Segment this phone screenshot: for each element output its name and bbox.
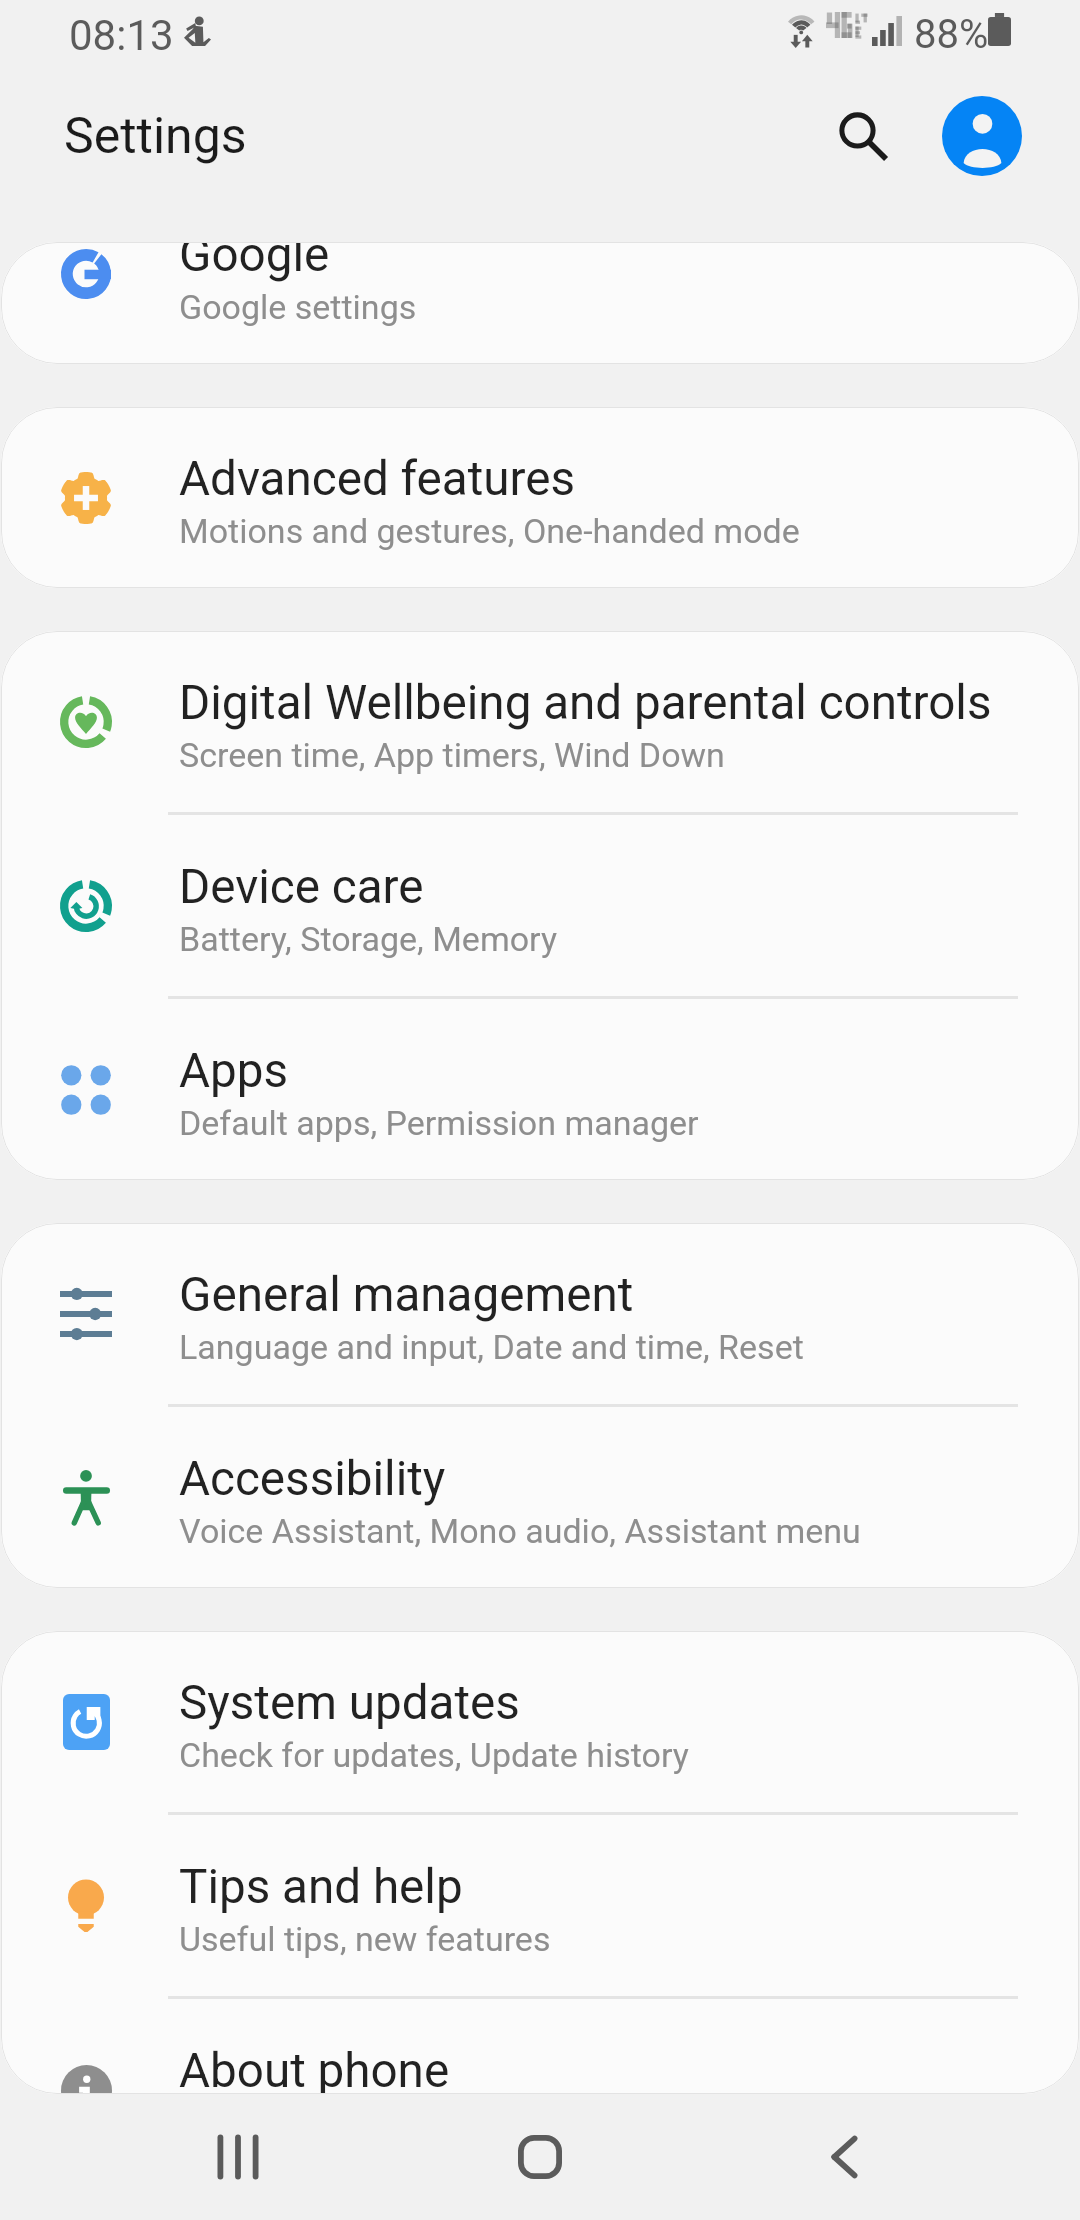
staticText: Language and input, Date and time, Reset xyxy=(179,1327,804,1367)
button[interactable]: Account xyxy=(942,96,1022,176)
button[interactable]: Google xyxy=(1,242,1079,364)
staticText: Google xyxy=(179,242,330,283)
staticText: 08:13 xyxy=(69,11,174,60)
staticText: Digital Wellbeing and parental controls xyxy=(179,675,992,731)
button[interactable]: Recent apps xyxy=(175,2094,301,2220)
button[interactable]: Accessibility xyxy=(1,1407,1079,1588)
staticText: Accessibility xyxy=(179,1451,446,1507)
button[interactable]: General management xyxy=(1,1223,1079,1404)
staticText: System updates xyxy=(179,1675,520,1731)
button[interactable]: Digital Wellbeing and parental controls xyxy=(1,631,1079,812)
button[interactable]: About phone xyxy=(1,1999,1079,2094)
staticText: General management xyxy=(179,1267,634,1323)
staticText: Voice Assistant, Mono audio, Assistant m… xyxy=(179,1511,861,1551)
staticText: Google settings xyxy=(179,287,417,327)
staticText: Screen time, App timers, Wind Down xyxy=(179,735,725,775)
button[interactable]: Tips and help xyxy=(1,1815,1079,1996)
staticText: Default apps, Permission manager xyxy=(179,1103,699,1143)
staticText: Settings xyxy=(64,107,247,166)
button[interactable]: Back xyxy=(781,2094,907,2220)
button[interactable]: Apps xyxy=(1,999,1079,1180)
button[interactable]: Search xyxy=(815,88,911,184)
staticText: Battery, Storage, Memory xyxy=(179,919,558,959)
staticText: Motions and gestures, One-handed mode xyxy=(179,511,800,551)
staticText: Tips and help xyxy=(179,1859,463,1915)
staticText: Check for updates, Update history xyxy=(179,1735,689,1775)
staticText: About phone xyxy=(179,2043,450,2094)
button[interactable]: Device care xyxy=(1,815,1079,996)
button[interactable]: Advanced features xyxy=(1,407,1079,588)
staticText: Advanced features xyxy=(179,451,575,507)
staticText: 88% xyxy=(914,11,989,58)
button[interactable]: Home xyxy=(477,2094,603,2220)
button[interactable]: System updates xyxy=(1,1631,1079,1812)
staticText: Useful tips, new features xyxy=(179,1919,551,1959)
staticText: Apps xyxy=(179,1043,289,1099)
staticText: Device care xyxy=(179,859,424,915)
